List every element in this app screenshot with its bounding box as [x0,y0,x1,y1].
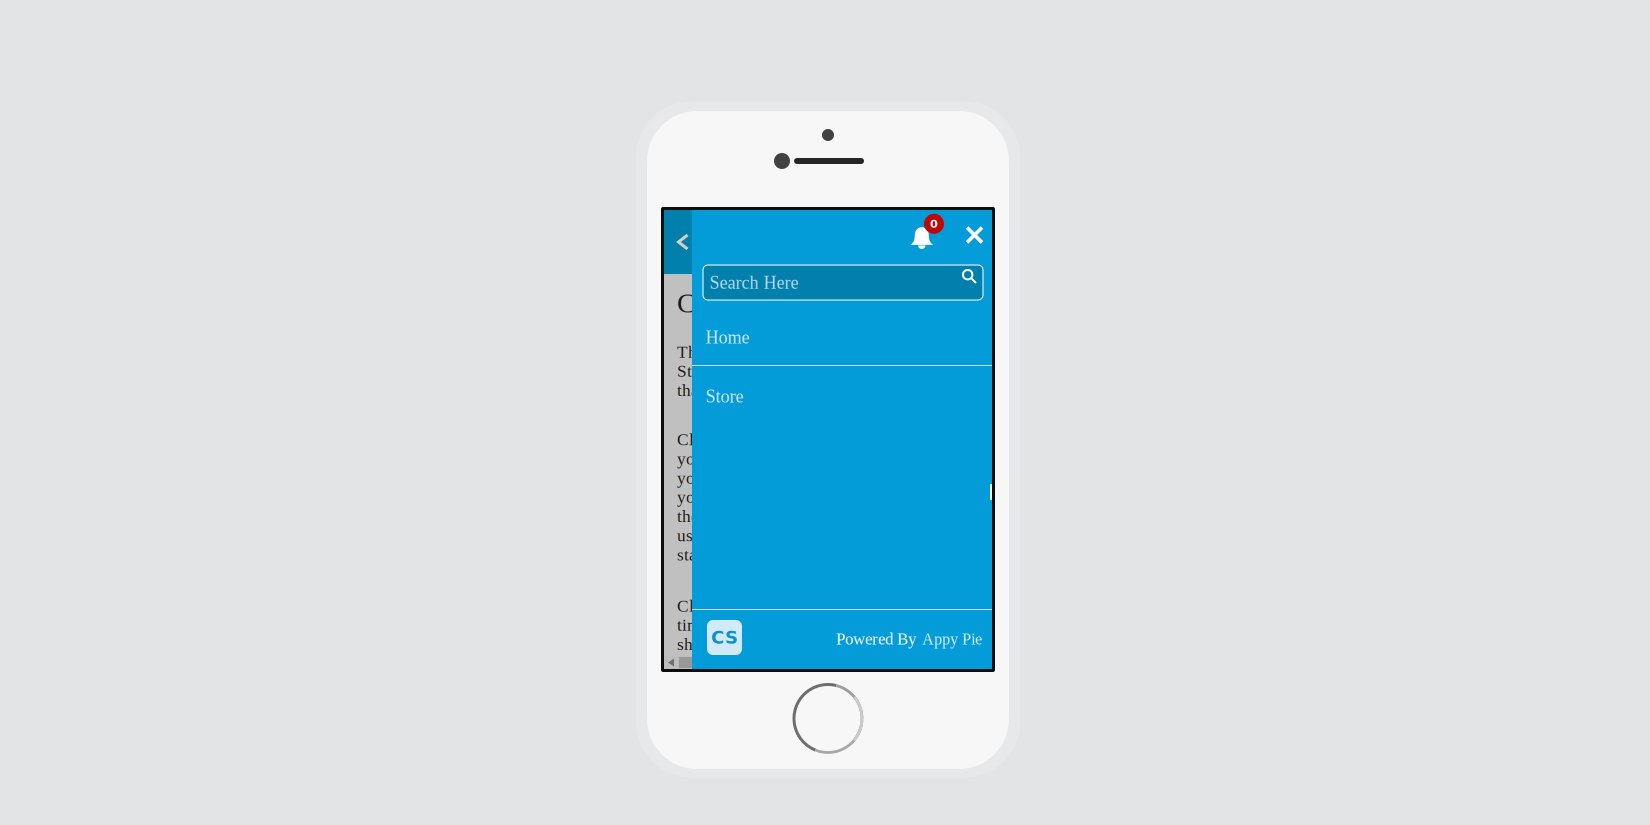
button[interactable]: CS [707,620,742,655]
button[interactable]: Close menu [956,217,992,253]
button[interactable]: Back [664,210,992,274]
button[interactable]: Notifications [910,214,950,254]
button[interactable]: Store [692,366,992,429]
staticText: Cl [677,287,704,318]
staticText: CS [711,627,738,648]
staticText: Powered By [836,630,916,648]
staticText: Clo you you you the use sta [677,430,704,564]
staticText: Clo tim sho [677,596,703,654]
staticText: Appy Pie [922,630,982,648]
button[interactable]: Search Here [703,265,983,300]
staticText: Th Sto tha [677,342,701,400]
staticText: Search Here [710,273,799,293]
staticText: Home [705,327,749,347]
button[interactable]: Home [692,301,992,365]
staticText: Store [705,386,743,406]
staticText: 0 [930,217,938,230]
